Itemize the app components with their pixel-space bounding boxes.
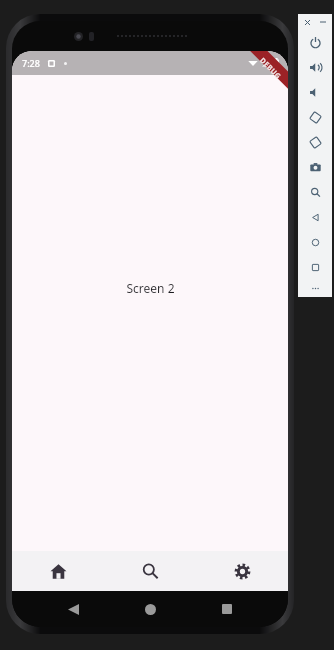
button[interactable]: Volume down (298, 80, 332, 105)
button[interactable]: Settings (196, 551, 288, 591)
button[interactable]: Home (298, 230, 332, 255)
button[interactable]: Back (298, 205, 332, 230)
button[interactable]: Power (298, 30, 332, 55)
button[interactable]: Close (303, 18, 312, 27)
button[interactable]: More (298, 280, 332, 297)
button[interactable]: Rotate right (298, 130, 332, 155)
button[interactable]: Search (104, 551, 196, 591)
button[interactable]: Rotate left (298, 105, 332, 130)
button[interactable]: Minimize (318, 18, 327, 27)
button[interactable]: Volume up (298, 55, 332, 80)
button[interactable]: Overview (298, 255, 332, 280)
staticText: Screen 2 (126, 280, 175, 296)
button[interactable]: Back (62, 598, 84, 620)
button[interactable]: Take screenshot (298, 155, 332, 180)
button[interactable]: Home (139, 598, 161, 620)
staticText: 7:28 (22, 57, 40, 69)
button[interactable]: Recent apps (216, 598, 238, 620)
staticText: DEBUG (257, 56, 284, 82)
button[interactable]: Zoom (298, 180, 332, 205)
button[interactable]: Home (12, 551, 104, 591)
